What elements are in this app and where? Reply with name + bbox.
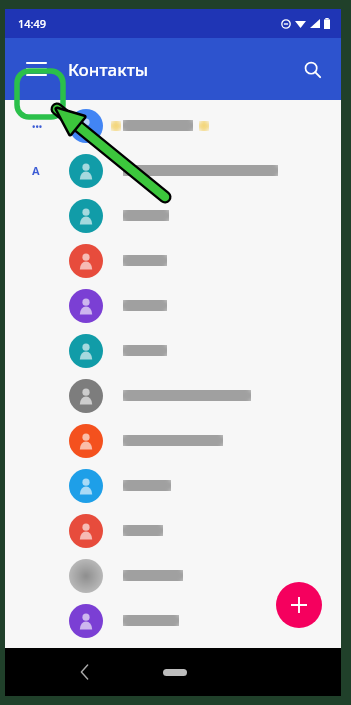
button[interactable] [5, 553, 341, 598]
button[interactable]: Back [67, 655, 101, 689]
button[interactable]: А [5, 148, 341, 193]
staticText: А [32, 163, 40, 178]
button[interactable] [5, 508, 341, 553]
button[interactable] [5, 283, 341, 328]
button[interactable] [5, 598, 341, 643]
button[interactable]: Add contact [276, 582, 322, 628]
button[interactable] [5, 238, 341, 283]
button[interactable] [5, 328, 341, 373]
staticText: ••• [32, 120, 43, 132]
button[interactable] [5, 373, 341, 418]
button[interactable]: Open navigation menu [19, 52, 53, 86]
button[interactable] [5, 463, 341, 508]
button[interactable] [5, 193, 341, 238]
button[interactable]: ••• [5, 103, 341, 148]
button[interactable]: Home [163, 669, 187, 676]
staticText: Контакты [68, 58, 149, 81]
button[interactable]: Search [295, 52, 329, 86]
staticText: 14:49 [18, 16, 47, 31]
button[interactable] [5, 418, 341, 463]
